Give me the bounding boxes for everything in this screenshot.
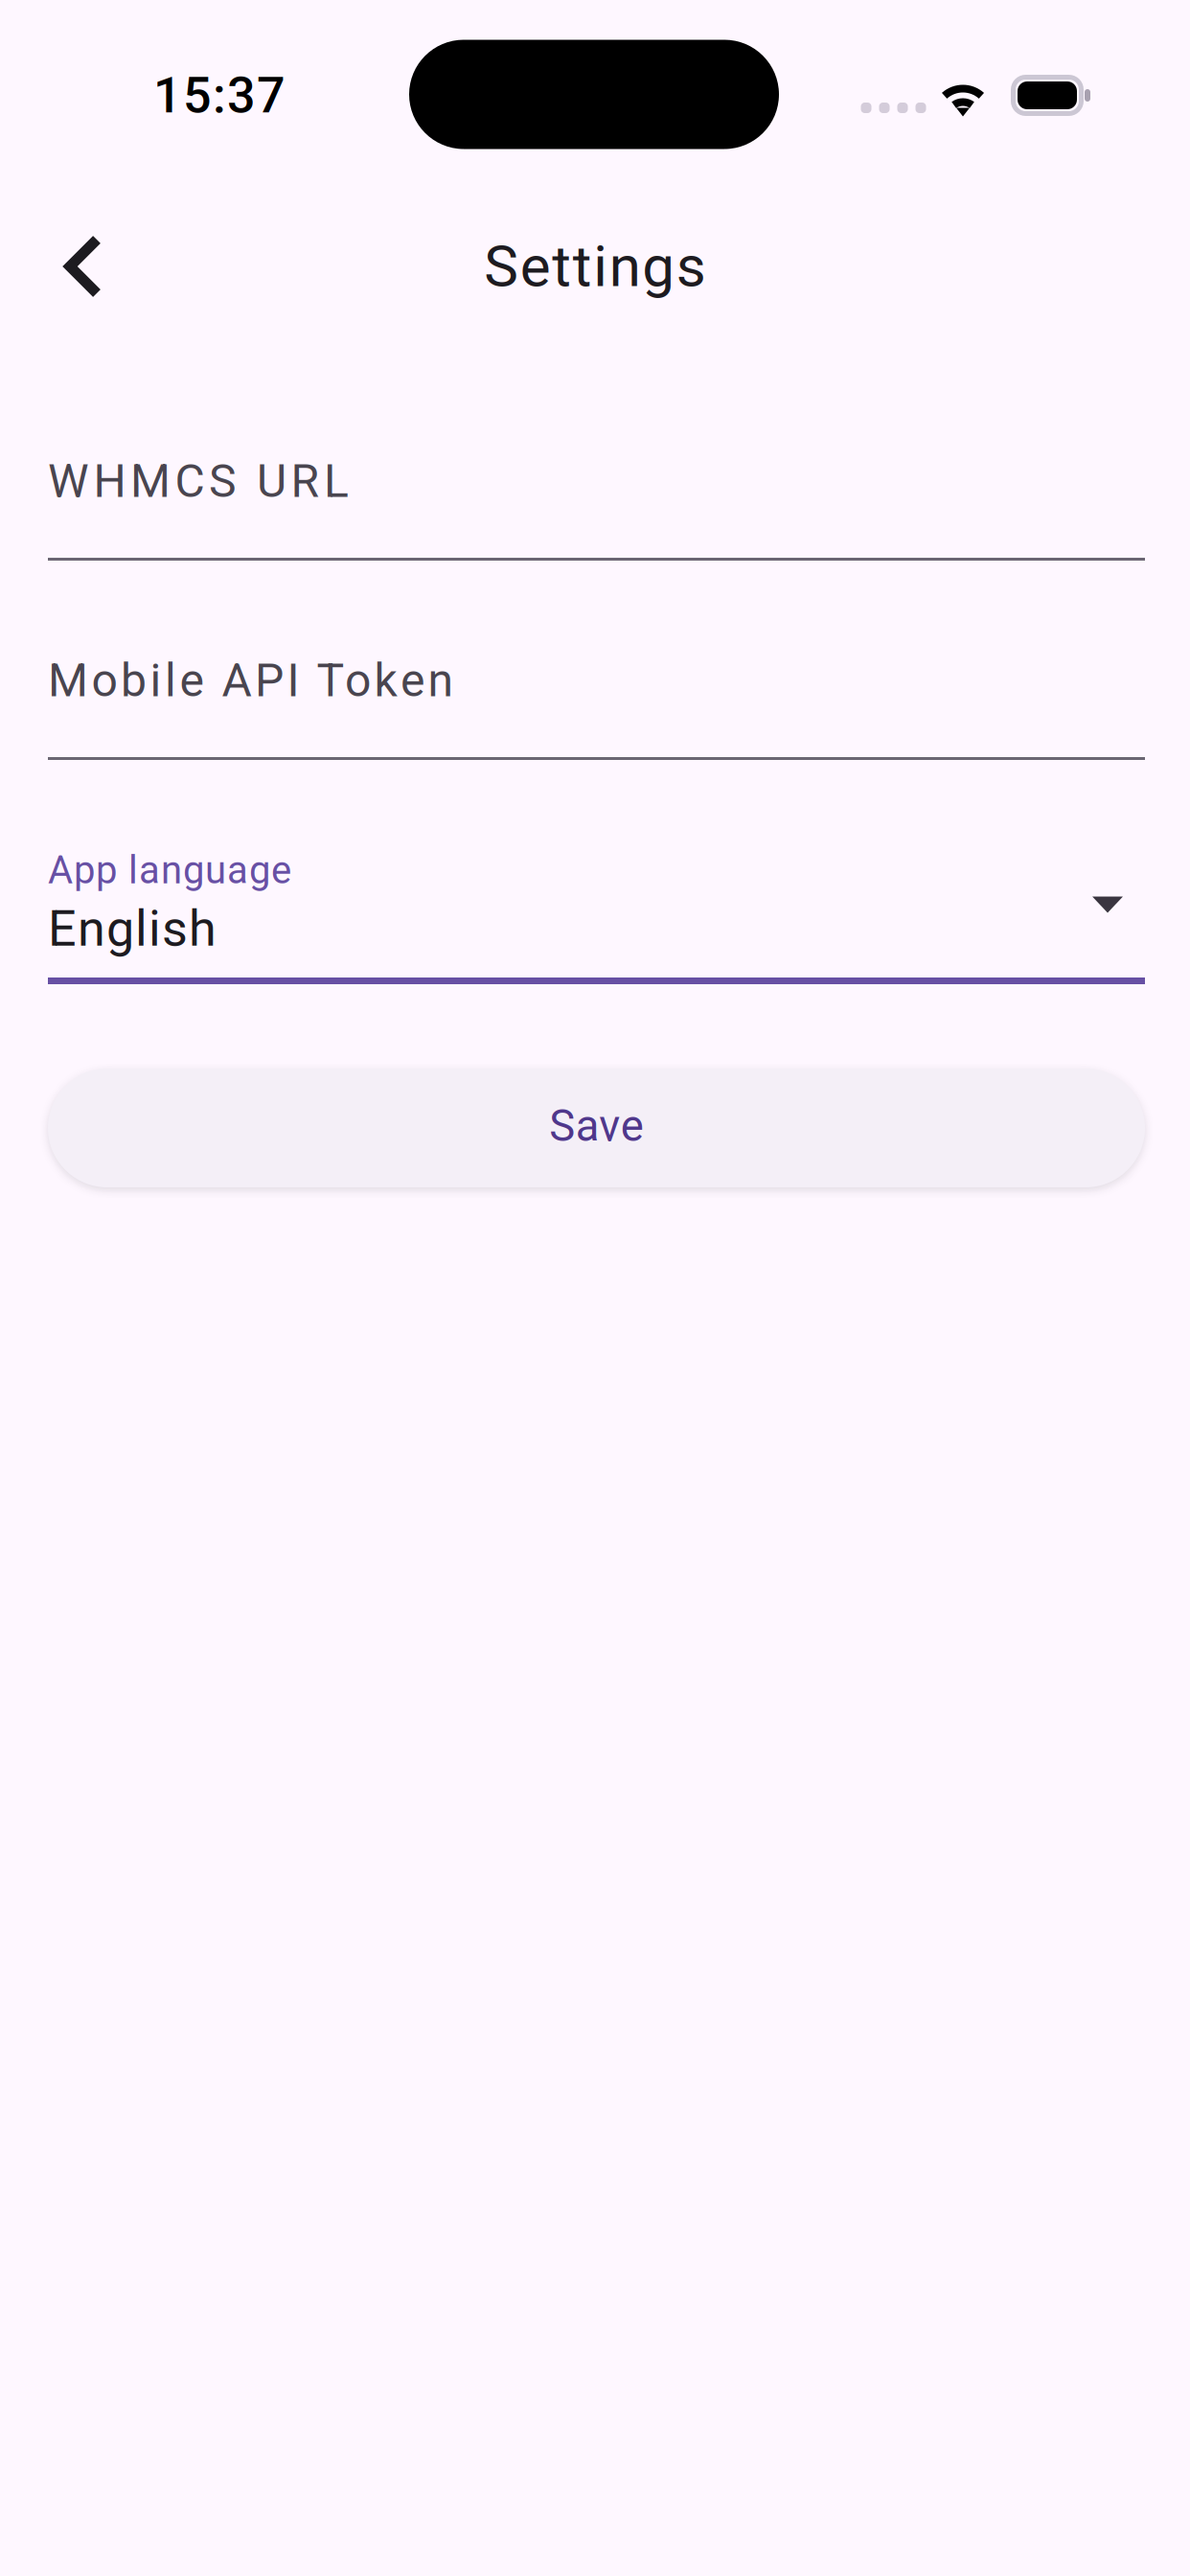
- button[interactable]: Save: [48, 1069, 1145, 1187]
- button[interactable]: WHMCS URL: [48, 456, 1145, 561]
- staticText: App language: [48, 848, 291, 893]
- staticText: Save: [549, 1101, 644, 1151]
- button[interactable]: Mobile API Token: [48, 655, 1145, 760]
- staticText: WHMCS URL: [48, 454, 349, 508]
- button[interactable]: Back: [0, 209, 140, 324]
- staticText: 15:37: [153, 66, 286, 124]
- staticText: Mobile API Token: [48, 653, 454, 707]
- button[interactable]: App language: [48, 849, 1145, 984]
- staticText: English: [48, 899, 217, 958]
- staticText: Settings: [484, 233, 706, 300]
